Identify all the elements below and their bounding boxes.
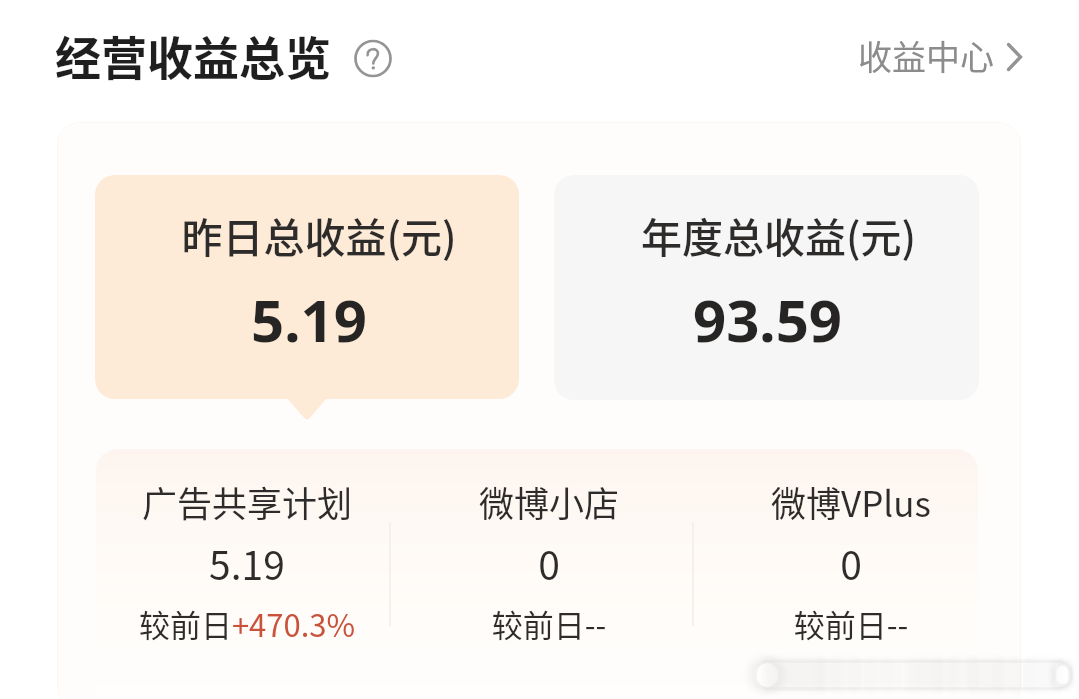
button[interactable]: 收益中心 bbox=[855, 26, 1024, 84]
staticText: 年度总收益(元) bbox=[566, 205, 979, 264]
staticText: 93.59 bbox=[555, 280, 979, 359]
staticText: 较前日+470.3% bbox=[102, 601, 392, 646]
staticText: 较前日-- bbox=[404, 601, 694, 646]
staticText: 广告共享计划 bbox=[102, 476, 392, 527]
staticText: 昨日总收益(元) bbox=[107, 205, 519, 264]
button[interactable]: 昨日总收益(元) bbox=[95, 175, 519, 399]
staticText: 0 bbox=[404, 535, 694, 591]
staticText: 5.19 bbox=[102, 535, 392, 591]
staticText: 较前日-- bbox=[706, 601, 996, 646]
staticText: 收益中心 bbox=[858, 31, 994, 80]
staticText: 经营收益总览 bbox=[55, 22, 331, 82]
button[interactable]: 微博小店 bbox=[404, 470, 694, 650]
staticText: 5.19 bbox=[97, 280, 519, 359]
other: Help bbox=[354, 35, 392, 73]
staticText: 微博VPlus bbox=[706, 476, 996, 527]
staticText: 微博小店 bbox=[404, 476, 694, 527]
staticText: 0 bbox=[706, 535, 996, 591]
button[interactable]: 年度总收益(元) bbox=[554, 175, 979, 400]
button[interactable]: 经营收益总览 bbox=[50, 24, 392, 84]
button[interactable]: 微博VPlus bbox=[706, 470, 996, 650]
button[interactable]: 广告共享计划 bbox=[102, 470, 392, 650]
other: Open revenue centre bbox=[1002, 35, 1024, 75]
